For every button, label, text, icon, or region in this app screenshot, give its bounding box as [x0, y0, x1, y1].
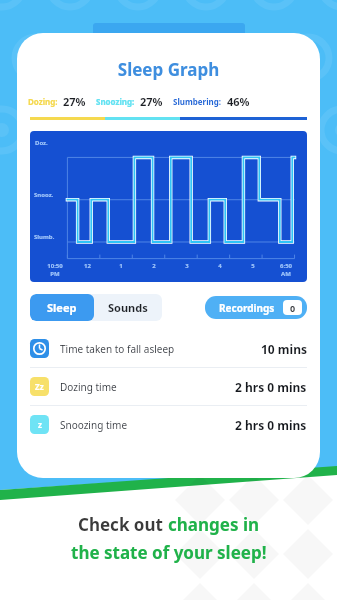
staticText: 2 hrs 0 mins: [235, 379, 307, 395]
staticText: Snoozing:: [96, 96, 135, 107]
button[interactable]: Zz: [17, 368, 320, 405]
staticText: Recordings: [219, 301, 275, 315]
staticText: 27%: [63, 94, 86, 109]
staticText: 2: [152, 262, 156, 270]
staticText: 1: [119, 262, 123, 270]
staticText: 5: [251, 262, 255, 270]
staticText: 46%: [227, 94, 250, 109]
button[interactable]: Recordings: [205, 296, 307, 319]
staticText: z: [38, 419, 42, 430]
staticText: Dozing time: [60, 380, 117, 394]
staticText: Slumbering:: [173, 96, 222, 107]
button[interactable]: Sounds: [94, 294, 162, 321]
staticText: 4: [218, 262, 222, 270]
button[interactable]: Sleep: [30, 294, 94, 321]
staticText: 6:50 AM: [280, 262, 292, 278]
staticText: 2 hrs 0 mins: [235, 417, 307, 433]
staticText: Slumb.: [34, 233, 55, 241]
staticText: changes in: [168, 513, 260, 536]
button[interactable]: z: [17, 406, 320, 443]
staticText: 10:50 PM: [47, 262, 63, 278]
staticText: Check out: [78, 513, 168, 536]
staticText: Zz: [35, 381, 44, 392]
button[interactable]: Tab: [93, 23, 245, 42]
staticText: Snooz.: [34, 191, 54, 199]
staticText: Sleep: [47, 300, 77, 315]
staticText: 10 mins: [261, 341, 307, 357]
staticText: Sleep Graph: [17, 58, 320, 81]
staticText: 3: [185, 262, 189, 270]
staticText: Dozing:: [28, 96, 58, 107]
button[interactable]: Time taken to fall asleep: [17, 330, 320, 367]
staticText: the state of your sleep!: [71, 541, 267, 564]
staticText: Time taken to fall asleep: [60, 342, 175, 356]
staticText: Snoozing time: [60, 418, 128, 432]
staticText: Sounds: [108, 300, 148, 315]
staticText: 0: [290, 302, 296, 314]
staticText: Doz.: [35, 139, 48, 147]
staticText: 27%: [140, 94, 163, 109]
staticText: 12: [84, 262, 91, 270]
